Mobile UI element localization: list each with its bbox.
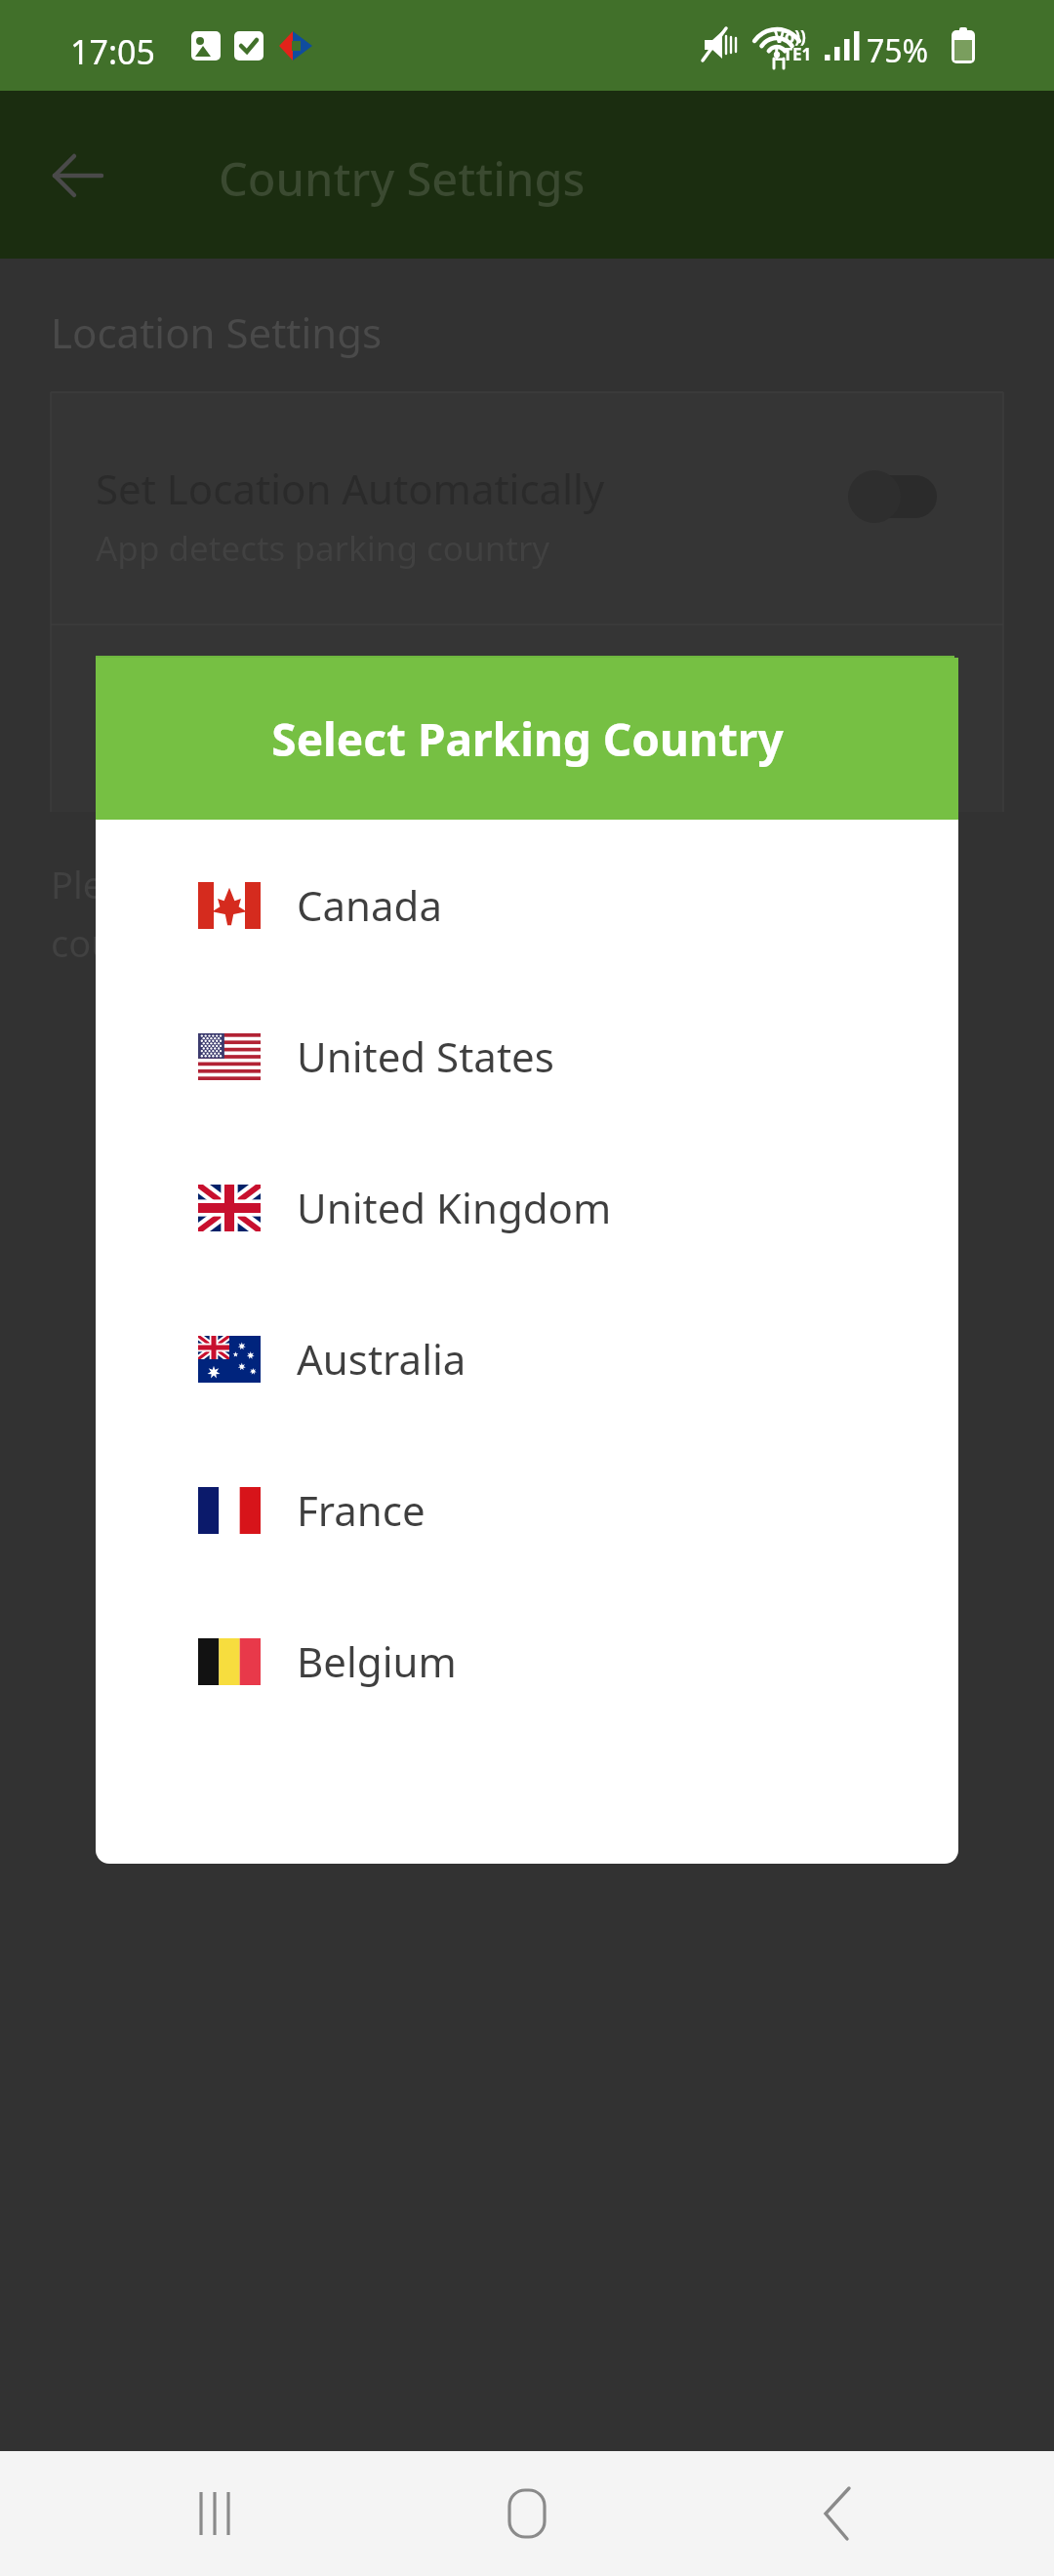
button[interactable]: United States — [96, 981, 958, 1132]
staticText: Location Settings — [51, 304, 383, 360]
button[interactable]: Home — [488, 2475, 566, 2553]
staticText: Country Settings — [219, 147, 586, 210]
staticText: Vo)) — [774, 25, 806, 48]
staticText: 75% — [867, 29, 929, 72]
staticText: Set Location Automatically — [96, 461, 605, 516]
button[interactable]: Back — [800, 2475, 878, 2553]
button[interactable]: Belgium — [96, 1586, 958, 1737]
staticText: App detects parking country — [96, 525, 550, 572]
button[interactable]: United Kingdom — [96, 1132, 958, 1283]
staticText: 17:05 — [70, 29, 155, 74]
button[interactable]: France — [96, 1434, 958, 1586]
button[interactable]: Canada — [96, 829, 958, 981]
button[interactable]: Recent apps — [176, 2475, 254, 2553]
staticText: Australia — [297, 1331, 466, 1387]
button[interactable]: Back — [37, 134, 121, 218]
staticText: country below — [51, 917, 299, 968]
staticText: United States — [297, 1028, 554, 1084]
staticText: United Kingdom — [297, 1180, 612, 1235]
staticText: Select Parking Country — [271, 708, 784, 770]
staticText: Please select your parking — [51, 859, 507, 909]
button[interactable]: Australia — [96, 1283, 958, 1434]
staticText: France — [297, 1482, 426, 1538]
staticText: Belgium — [297, 1633, 457, 1689]
staticText: LTE1 — [774, 43, 812, 65]
staticText: Canada — [297, 877, 443, 933]
